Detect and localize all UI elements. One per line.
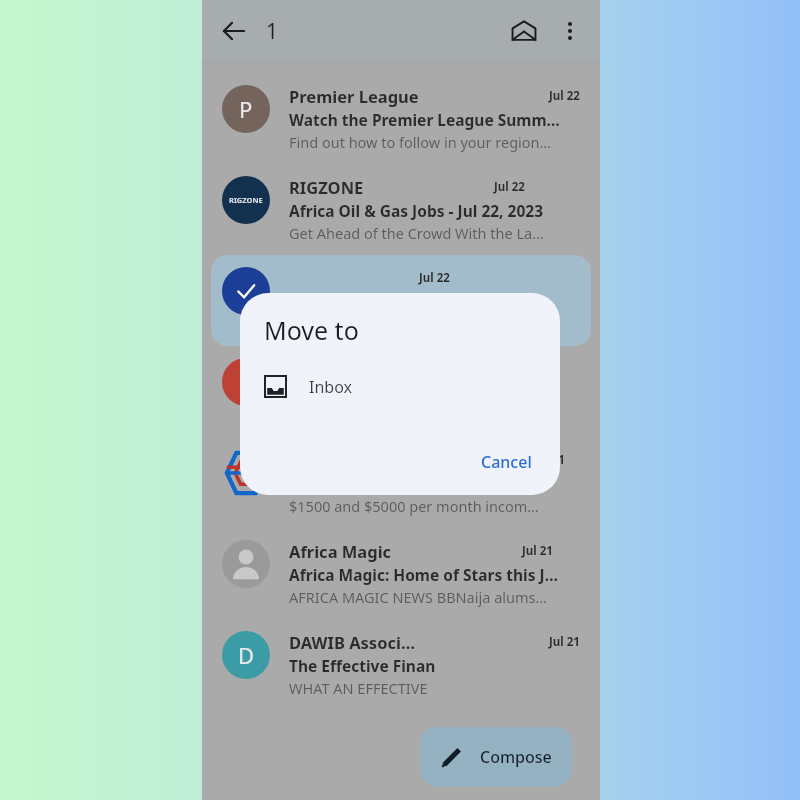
staticText: Move to (264, 313, 359, 347)
button[interactable]: Jul 21 (211, 346, 591, 437)
staticText: $1500 and $5000 per month incom… (289, 496, 539, 516)
staticText: The Effective Finan (289, 655, 436, 676)
button[interactable]: RIGZONE (211, 164, 591, 255)
staticText: Get Ahead of the Crowd With the La… (289, 223, 544, 243)
staticText: Jul 22 (549, 88, 580, 104)
staticText: Premier League (289, 85, 419, 107)
staticText: Africa Magic: Home of Stars this J… (289, 564, 558, 585)
staticText: Africa Oil & Gas Jobs - Jul 22, 2023 (289, 200, 544, 221)
button[interactable]: P (211, 73, 591, 164)
staticText: Inbox (309, 376, 352, 398)
button[interactable]: Compose (420, 727, 572, 787)
button[interactable]: More options (548, 9, 592, 53)
button[interactable]: Mark as read (500, 7, 548, 55)
button[interactable]: Cancel (469, 443, 544, 481)
staticText: RIGZONE (289, 176, 364, 198)
staticText: RIGZONE (229, 195, 263, 205)
staticText: Watch the Premier League Summ… (289, 109, 560, 130)
staticText: Africa Magic (289, 540, 392, 562)
staticText: Find out how to follow in your region… (289, 132, 552, 152)
button[interactable]: Jul 22 (211, 255, 591, 346)
staticText: Compose (480, 746, 552, 768)
staticText: DAWIB Associates (289, 631, 419, 653)
staticText: P (239, 94, 253, 124)
staticText: 1 (266, 17, 279, 46)
staticText: Jul 21 (549, 634, 580, 650)
button[interactable]: Inbox (240, 367, 560, 406)
staticText: $2,500 Side Hustles for Busy Wor… (289, 473, 550, 494)
staticText: AFRICA MAGIC NEWS BBNaija alums… (289, 587, 547, 607)
staticText: Cancel (481, 451, 532, 473)
staticText: Jul 21 (522, 543, 553, 559)
button[interactable]: D (211, 619, 591, 710)
staticText: Jul 22 (494, 179, 525, 195)
staticText: WHAT AN EFFECTIVE (289, 678, 428, 698)
button[interactable]: Back (210, 7, 258, 55)
staticText: D (238, 640, 255, 670)
button[interactable]: Africa Magic (211, 528, 591, 619)
staticText: Jul 22 (419, 270, 450, 286)
button[interactable]: Tobi Asehinde (211, 437, 591, 528)
staticText: Jul 21 (534, 452, 565, 468)
